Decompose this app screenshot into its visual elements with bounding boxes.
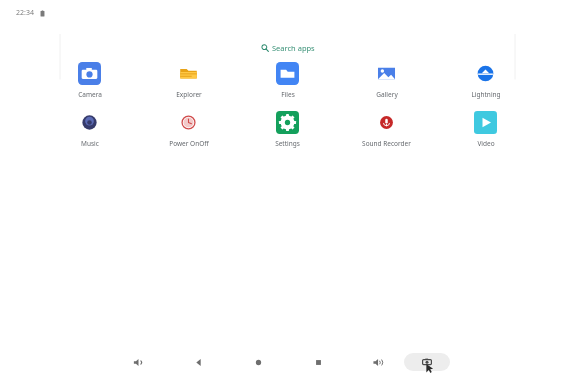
button[interactable]: Files <box>238 62 337 99</box>
button[interactable]: Back <box>186 350 210 374</box>
staticText: Power OnOff <box>169 139 209 148</box>
button[interactable]: Gallery <box>337 62 436 99</box>
button[interactable]: Home <box>246 350 270 374</box>
staticText: Settings <box>275 139 300 148</box>
staticText: Gallery <box>376 90 398 99</box>
staticText: 22:34 <box>16 8 34 18</box>
button[interactable]: Video <box>436 111 535 148</box>
button[interactable]: Volume up <box>366 350 390 374</box>
staticText: Explorer <box>176 90 202 99</box>
staticText: Video <box>477 139 495 148</box>
button[interactable]: Screenshot <box>404 353 450 371</box>
staticText: Camera <box>78 90 102 99</box>
staticText: Music <box>81 139 99 148</box>
button[interactable]: Explorer <box>139 62 238 99</box>
button[interactable]: Recent apps <box>306 350 330 374</box>
button[interactable]: Sound Recorder <box>337 111 436 148</box>
button[interactable]: Volume down <box>126 350 150 374</box>
button[interactable]: Lightning <box>436 62 535 99</box>
button[interactable]: Music <box>40 111 139 148</box>
staticText: Sound Recorder <box>362 139 411 148</box>
staticText: Files <box>281 90 295 99</box>
button[interactable]: Settings <box>238 111 337 148</box>
staticText: Lightning <box>471 90 501 99</box>
button[interactable]: Power OnOff <box>139 111 238 148</box>
staticText: Search apps <box>272 43 315 53</box>
button[interactable]: Camera <box>40 62 139 99</box>
button[interactable]: Search apps <box>0 40 575 56</box>
